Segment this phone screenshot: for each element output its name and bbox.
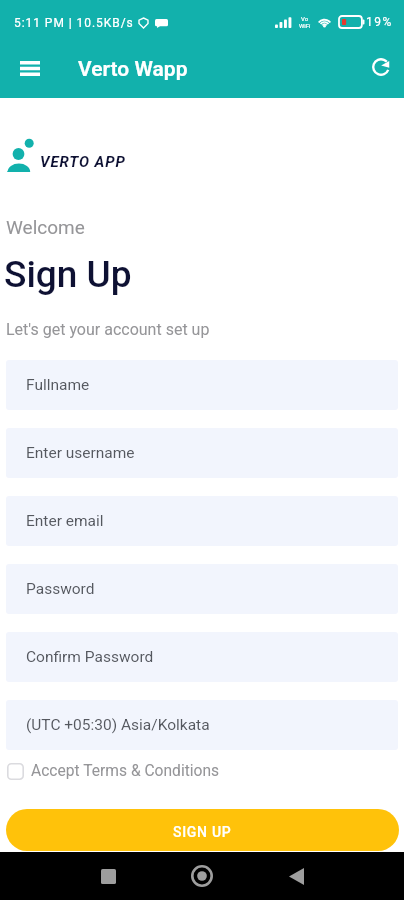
button[interactable]: Menu	[12, 50, 48, 86]
button[interactable]: Refresh	[363, 49, 399, 85]
button[interactable]: Recents	[90, 858, 126, 894]
staticText: SIGN UP	[173, 824, 232, 840]
button[interactable]: Enter username	[6, 428, 398, 478]
button[interactable]: Enter email	[6, 496, 398, 546]
staticText: Sign Up	[4, 253, 132, 296]
staticText: Confirm Password	[26, 648, 154, 666]
button[interactable]: SIGN UP	[6, 809, 399, 851]
staticText: VERTO APP	[40, 153, 126, 171]
staticText: WiFi	[299, 22, 311, 29]
staticText: Enter email	[26, 512, 104, 530]
button[interactable]: (UTC +05:30) Asia/Kolkata	[6, 700, 398, 750]
staticText: Accept Terms & Conditions	[31, 762, 220, 780]
staticText: 19%	[366, 15, 393, 29]
button[interactable]: Fullname	[6, 360, 398, 410]
button[interactable]: Back	[278, 858, 314, 894]
button[interactable]: Accept Terms & Conditions	[7, 762, 220, 780]
staticText: Let's get your account set up	[6, 320, 210, 339]
button[interactable]: Confirm Password	[6, 632, 398, 682]
staticText: Vo	[301, 15, 309, 22]
button[interactable]: Password	[6, 564, 398, 614]
staticText: Welcome	[6, 216, 85, 238]
staticText: Password	[26, 580, 95, 598]
staticText: Enter username	[26, 444, 135, 462]
staticText: (UTC +05:30) Asia/Kolkata	[26, 716, 210, 734]
staticText: Fullname	[26, 376, 90, 394]
staticText: Verto Wapp	[78, 57, 188, 82]
button[interactable]: Home	[184, 858, 220, 894]
staticText: 5:11 PM | 10.5KB/s	[14, 16, 134, 30]
